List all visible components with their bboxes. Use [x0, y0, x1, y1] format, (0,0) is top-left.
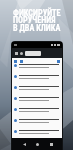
button[interactable]: Back — [22, 142, 26, 146]
button[interactable]: Back — [14, 51, 18, 55]
button[interactable] — [12, 108, 62, 119]
button[interactable]: Home — [35, 142, 39, 146]
staticText: В ДВА КЛИКА — [13, 23, 61, 33]
staticText: ПОРУЧЕНИЯ — [13, 15, 56, 25]
staticText: ФИКСИРУЙТЕ — [13, 8, 61, 18]
button[interactable]: Search — [19, 51, 23, 55]
button[interactable] — [12, 64, 62, 75]
button[interactable] — [12, 97, 62, 108]
button[interactable] — [12, 130, 62, 138]
button[interactable]: Recents — [49, 142, 53, 146]
button[interactable] — [12, 119, 62, 130]
button[interactable] — [12, 75, 62, 86]
button[interactable] — [12, 86, 62, 97]
